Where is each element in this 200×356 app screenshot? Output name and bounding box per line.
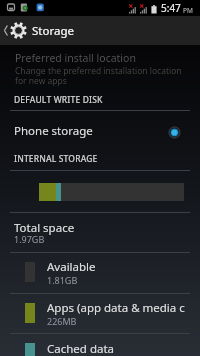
- staticText: PM: [183, 6, 193, 15]
- staticText: 226MB: [47, 315, 77, 327]
- button[interactable]: Available: [0, 253, 200, 293]
- staticText: Storage: [32, 23, 74, 39]
- staticText: 1.81GB: [47, 274, 78, 286]
- staticText: Phone storage: [14, 123, 93, 139]
- button[interactable]: Total space: [0, 213, 200, 253]
- staticText: Apps (app data & media c: [47, 300, 185, 316]
- button[interactable]: Apps (app data & media c: [0, 294, 200, 334]
- staticText: Cached data: [47, 341, 115, 356]
- staticText: Preferred install location: [15, 51, 136, 65]
- button[interactable]: Navigate up: [0, 16, 200, 45]
- staticText: INTERNAL STORAGE: [14, 153, 98, 165]
- staticText: Change the preferred installation locati…: [15, 65, 182, 86]
- staticText: DEFAULT WRITE DISK: [14, 94, 103, 106]
- staticText: Available: [47, 259, 96, 275]
- staticText: 5:47: [161, 1, 181, 15]
- staticText: 1.97GB: [14, 233, 45, 245]
- button[interactable]: Phone storage: [0, 111, 200, 161]
- button[interactable]: Cached data: [0, 334, 200, 356]
- button[interactable]: Preferred install location: [0, 46, 200, 86]
- staticText: Total space: [14, 220, 75, 236]
